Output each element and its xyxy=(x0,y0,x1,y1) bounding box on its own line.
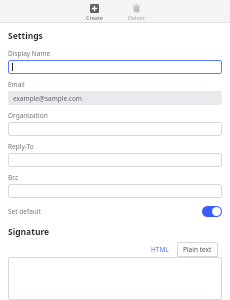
staticText: example@sample.com xyxy=(13,94,82,103)
button[interactable] xyxy=(8,153,222,167)
staticText: Bcc xyxy=(8,173,19,182)
staticText: Set default xyxy=(8,207,41,216)
staticText: Organization xyxy=(8,111,48,120)
staticText: Reply-To xyxy=(8,142,34,151)
button[interactable] xyxy=(8,257,222,300)
staticText: Settings xyxy=(8,30,43,42)
staticText: Email xyxy=(8,80,25,89)
staticText: Plain text xyxy=(183,245,212,254)
staticText: Signature xyxy=(8,226,50,238)
button[interactable]: Delete xyxy=(120,2,152,21)
staticText: HTML xyxy=(151,245,169,254)
button[interactable] xyxy=(8,60,222,74)
button[interactable] xyxy=(8,122,222,136)
staticText: Delete xyxy=(128,14,145,21)
button[interactable]: Plain text xyxy=(177,242,218,257)
button[interactable]: Create xyxy=(78,2,110,21)
staticText: Display Name xyxy=(8,49,51,58)
button[interactable]: example@sample.com xyxy=(8,91,222,105)
button[interactable] xyxy=(8,184,222,198)
button[interactable]: HTML xyxy=(145,242,175,257)
button[interactable]: Set default xyxy=(8,203,222,219)
staticText: Create xyxy=(86,14,103,21)
